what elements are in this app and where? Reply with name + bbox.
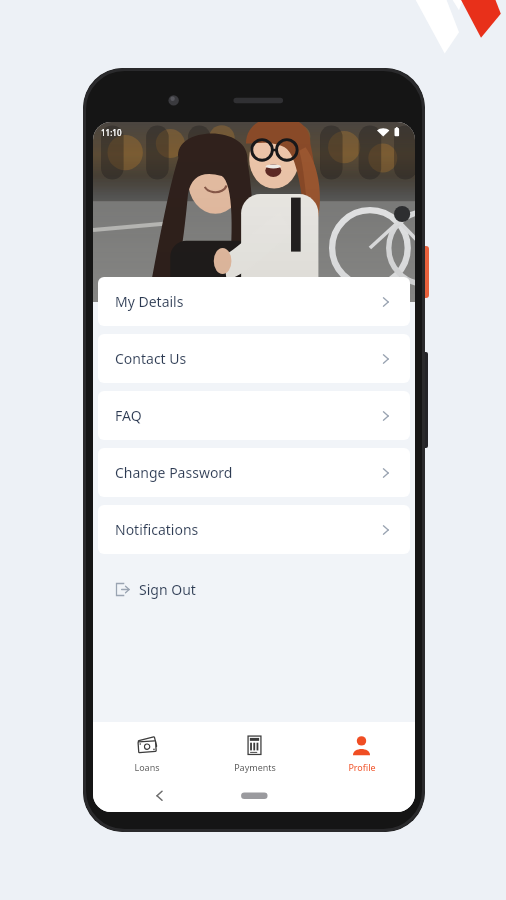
staticText: FAQ: [115, 406, 142, 425]
button[interactable]: Loans: [93, 722, 201, 784]
staticText: Sign Out: [139, 580, 196, 599]
staticText: 11:10: [101, 127, 122, 138]
button[interactable]: FAQ: [98, 391, 410, 440]
button[interactable]: Profile: [308, 722, 415, 784]
button[interactable]: Change Password: [98, 448, 410, 497]
button[interactable]: Notifications: [98, 505, 410, 554]
staticText: Loans: [134, 761, 160, 773]
button[interactable]: Contact Us: [98, 334, 410, 383]
staticText: Payments: [234, 761, 276, 773]
staticText: My Details: [115, 292, 184, 311]
button[interactable]: My Details: [98, 277, 410, 326]
staticText: Notifications: [115, 520, 199, 539]
staticText: Profile: [348, 761, 376, 773]
staticText: Change Password: [115, 463, 233, 482]
button[interactable]: Sign Out: [93, 572, 415, 606]
button[interactable]: Payments: [201, 722, 308, 784]
staticText: Contact Us: [115, 349, 187, 368]
